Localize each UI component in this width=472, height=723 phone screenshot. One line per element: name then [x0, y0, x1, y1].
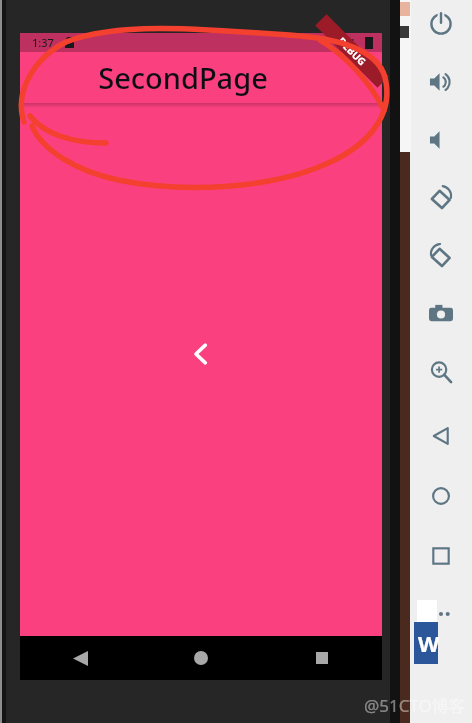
button[interactable]: Recent apps — [419, 534, 463, 578]
button[interactable]: More options — [419, 592, 463, 636]
staticText: W — [418, 628, 440, 658]
button[interactable]: Rotate right — [419, 234, 463, 278]
staticText: 1:37 — [32, 35, 54, 50]
button[interactable]: Home — [140, 636, 261, 680]
button[interactable]: Screenshot — [419, 292, 463, 336]
button[interactable]: Back — [178, 331, 224, 377]
button[interactable]: Back — [20, 636, 140, 680]
button[interactable]: Back — [419, 414, 463, 458]
button[interactable]: Power — [419, 2, 463, 46]
staticText: DEBUG — [335, 34, 370, 69]
button[interactable]: Home — [419, 474, 463, 518]
staticText: @51CTO博客 — [364, 694, 466, 717]
staticText: SecondPage — [98, 58, 268, 97]
button[interactable]: Volume down — [419, 118, 463, 162]
button[interactable]: Recent apps — [261, 636, 382, 680]
button[interactable]: Zoom — [419, 350, 463, 394]
button[interactable]: Rotate left — [419, 176, 463, 220]
button[interactable]: Volume up — [419, 60, 463, 104]
